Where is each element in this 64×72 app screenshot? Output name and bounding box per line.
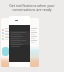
button[interactable] (1, 18, 10, 67)
staticText: Get notifications when your conversation… (1, 3, 63, 12)
button[interactable] (9, 16, 30, 67)
button[interactable] (30, 18, 39, 67)
